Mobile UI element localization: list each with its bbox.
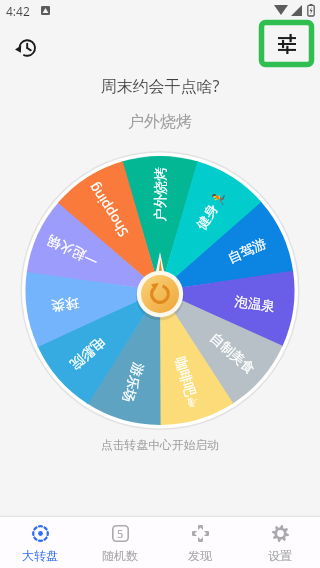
button[interactable]: 设置 [240,517,320,568]
staticText: 随机数 [102,548,138,563]
staticText: 发现 [188,548,212,563]
staticText: 5 [117,526,124,541]
staticText: 户外烧烤 [0,112,320,132]
staticText: 点击转盘中心开始启动 [0,438,320,453]
button[interactable]: Settings [259,20,314,67]
button[interactable]: 大转盘 [0,517,80,568]
staticText: 4:42 [6,3,30,19]
button[interactable]: History [9,31,42,64]
button[interactable]: 发现 [160,517,240,568]
staticText: 周末约会干点啥? [0,75,320,97]
staticText: 大转盘 [22,548,58,563]
staticText: 设置 [268,548,292,563]
button[interactable]: 5 [80,517,160,568]
